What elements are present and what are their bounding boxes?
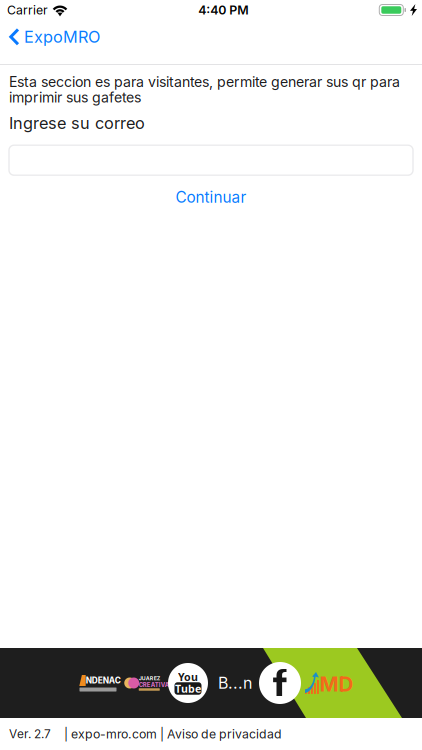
- button[interactable]: ExpoMRO: [0, 20, 100, 54]
- button[interactable]: INDENAC: [79, 672, 117, 693]
- staticText: Ingrese su correo: [9, 113, 145, 133]
- staticText: Tube: [175, 681, 201, 696]
- staticText: Carrier: [7, 3, 48, 17]
- button[interactable]: Juarez Creativa: [126, 674, 160, 692]
- button[interactable]: Continuar: [0, 186, 422, 208]
- staticText: | expo-mro.com | Aviso de privacidad: [64, 727, 282, 741]
- staticText: ExpoMRO: [24, 27, 100, 47]
- staticText: CREATIVA: [139, 681, 170, 688]
- button[interactable]: MD: [305, 671, 346, 695]
- staticText: Continuar: [175, 188, 246, 206]
- button[interactable]: | expo-mro.com | Aviso de privacidad: [64, 727, 282, 741]
- staticText: Esta seccion es para visitantes, permite…: [9, 73, 400, 90]
- button[interactable]: YouTube: [168, 663, 208, 703]
- button[interactable]: Facebook: [259, 662, 301, 704]
- staticText: Ver. 2.7: [9, 727, 51, 741]
- staticText: B...n: [218, 673, 252, 693]
- staticText: imprimir sus gafetes: [9, 89, 141, 106]
- staticText: You: [178, 670, 198, 684]
- staticText: JUAREZ: [139, 675, 161, 681]
- staticText: MD: [319, 672, 353, 696]
- staticText: 4:40 PM: [198, 2, 248, 17]
- staticText: NDENAC: [86, 675, 121, 685]
